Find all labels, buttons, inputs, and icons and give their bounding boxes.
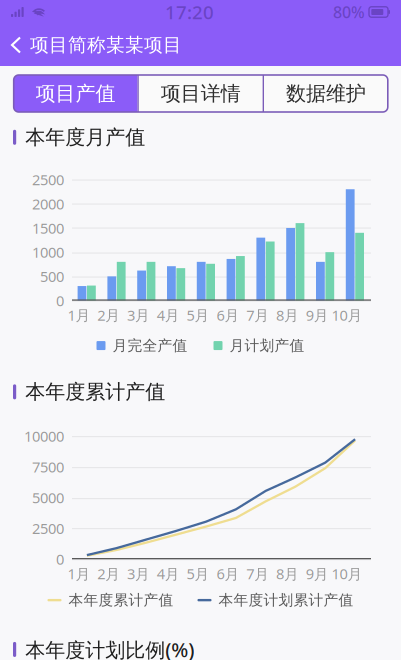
staticText: 2000	[32, 194, 64, 213]
staticText: 1500	[32, 218, 64, 238]
staticText: 6月	[216, 564, 239, 583]
staticText: 2500	[32, 170, 64, 189]
staticText: 0	[56, 291, 64, 310]
button[interactable]: 项目详情	[139, 75, 263, 112]
staticText: 本年度累计产值	[25, 380, 165, 404]
staticText: 本年度累计产值	[68, 591, 173, 609]
staticText: 4月	[157, 564, 180, 583]
staticText: 项目详情	[161, 81, 241, 106]
button[interactable]: 数据维护	[264, 75, 388, 112]
staticText: 1月	[67, 564, 90, 583]
staticText: 2月	[97, 564, 120, 583]
staticText: 9月	[306, 564, 329, 583]
staticText: 10月	[332, 564, 363, 583]
staticText: 8月	[276, 564, 299, 583]
staticText: 10月	[332, 305, 363, 325]
staticText: 本年度月产值	[25, 125, 145, 150]
staticText: 1000	[32, 242, 64, 262]
staticText: 7月	[246, 305, 269, 325]
staticText: 5月	[187, 305, 210, 325]
staticText: 8月	[276, 305, 299, 325]
staticText: 17:20	[165, 0, 214, 24]
staticText: 2500	[32, 519, 64, 538]
staticText: 7月	[246, 564, 269, 583]
staticText: 本年度计划累计产值	[218, 591, 353, 609]
staticText: 4月	[157, 305, 180, 325]
staticText: 3月	[127, 564, 150, 583]
staticText: 80%	[333, 1, 365, 23]
staticText: 本年度计划比例(%)	[25, 636, 194, 660]
staticText: 1月	[67, 305, 90, 325]
staticText: 月完全产值	[112, 337, 187, 355]
staticText: 5月	[187, 564, 210, 583]
staticText: 6月	[216, 305, 239, 325]
staticText: 7500	[32, 457, 64, 477]
staticText: 月计划产值	[229, 337, 304, 355]
staticText: 数据维护	[286, 81, 366, 106]
staticText: 项目简称某某项目	[30, 33, 182, 56]
button[interactable]: 项目产值	[14, 75, 137, 112]
button[interactable]: 项目简称某某项目	[0, 26, 190, 63]
staticText: 项目产值	[36, 81, 116, 106]
staticText: 3月	[127, 305, 150, 325]
staticText: 10000	[24, 426, 64, 446]
staticText: 9月	[306, 305, 329, 325]
staticText: 0	[56, 549, 64, 569]
staticText: 2月	[97, 305, 120, 325]
staticText: 500	[40, 267, 64, 286]
staticText: 5000	[32, 488, 64, 507]
